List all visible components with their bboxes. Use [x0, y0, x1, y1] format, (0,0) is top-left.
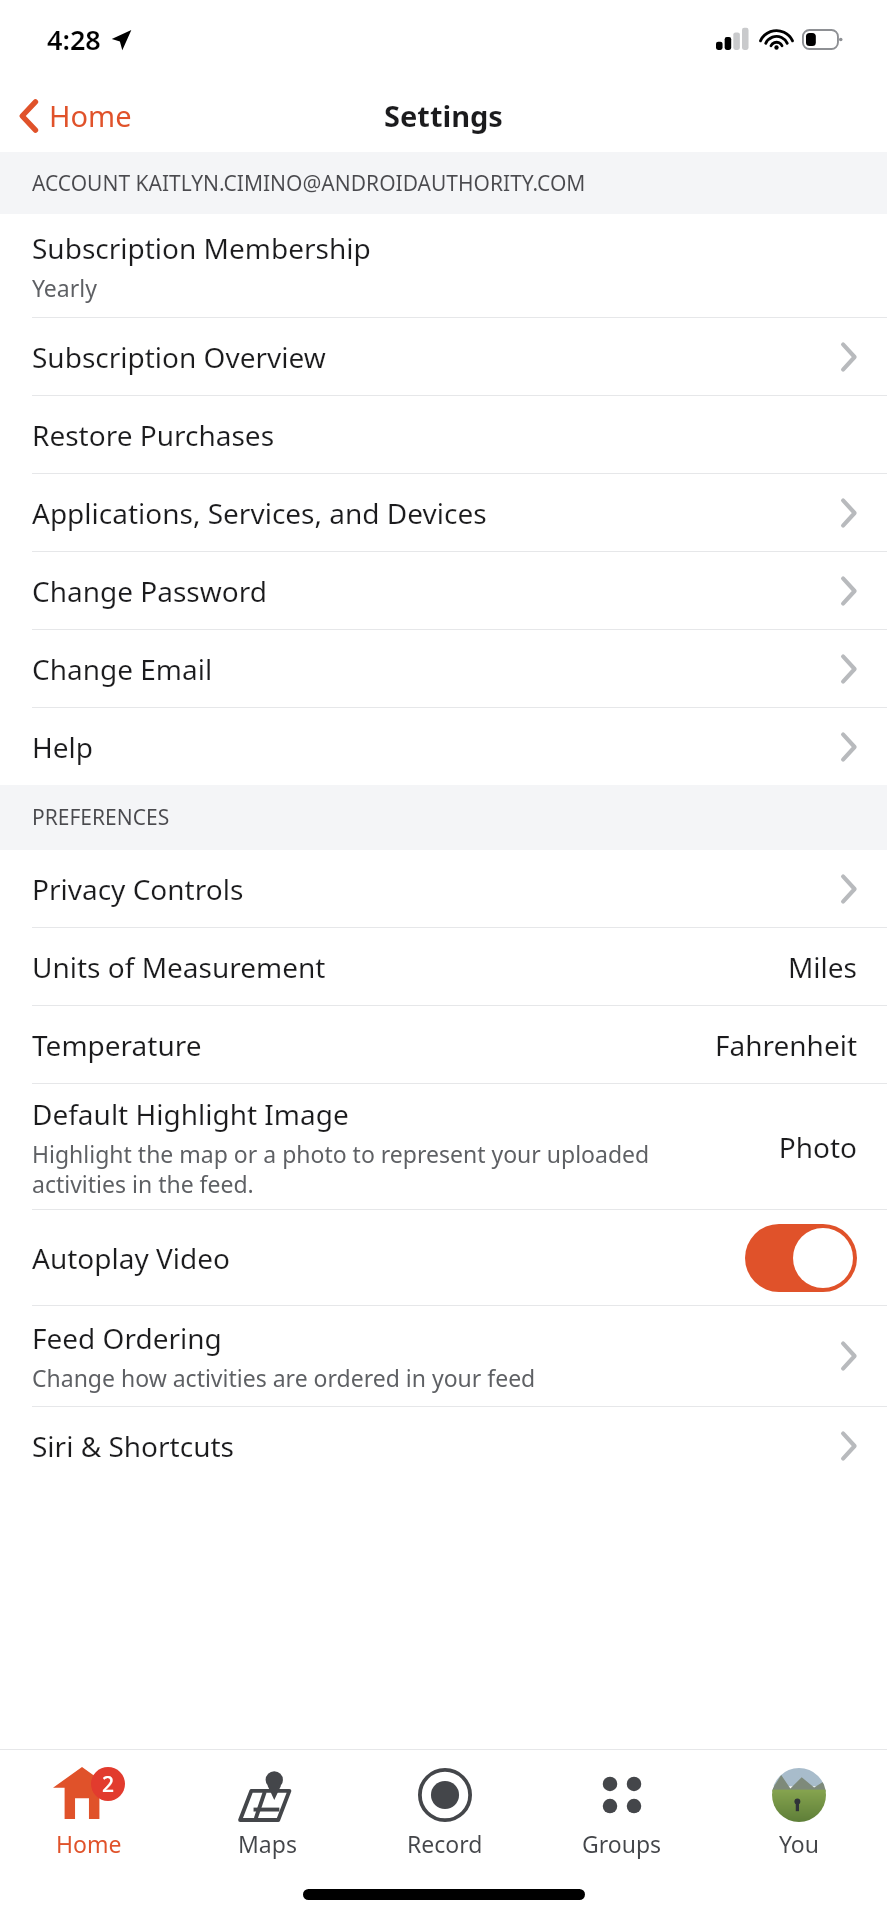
- staticText: Groups: [582, 1828, 662, 1859]
- button[interactable]: Help: [0, 708, 887, 785]
- staticText: Home: [56, 1828, 122, 1859]
- button[interactable]: Change Password: [0, 552, 887, 629]
- staticText: Subscription Overview: [32, 338, 326, 376]
- staticText: Miles: [787, 948, 857, 986]
- staticText: 2: [102, 1770, 115, 1799]
- staticText: Change how activities are ordered in you…: [32, 1362, 536, 1393]
- button[interactable]: Default Highlight Image: [0, 1084, 887, 1209]
- staticText: Siri & Shortcuts: [32, 1427, 234, 1465]
- staticText: Record: [407, 1828, 483, 1859]
- button[interactable]: Subscription Membership: [0, 214, 887, 317]
- staticText: Maps: [238, 1828, 297, 1859]
- staticText: Help: [32, 728, 93, 766]
- staticText: Yearly: [32, 272, 97, 303]
- staticText: Units of Measurement: [32, 948, 326, 986]
- button[interactable]: Privacy Controls: [0, 850, 887, 927]
- button[interactable]: Feed Ordering: [0, 1306, 887, 1406]
- staticText: Privacy Controls: [32, 870, 244, 908]
- staticText: Fahrenheit: [714, 1026, 857, 1064]
- button[interactable]: You: [710, 1750, 887, 1868]
- staticText: 4:28: [47, 21, 101, 58]
- staticText: Home: [49, 96, 132, 135]
- staticText: Photo: [778, 1128, 857, 1166]
- button[interactable]: Maps: [178, 1750, 356, 1868]
- button[interactable]: Temperature: [0, 1006, 887, 1083]
- staticText: Default Highlight Image: [32, 1095, 349, 1133]
- staticText: Change Password: [32, 572, 267, 610]
- staticText: Subscription Membership: [32, 229, 371, 267]
- staticText: Change Email: [32, 650, 213, 688]
- staticText: Autoplay Video: [32, 1239, 230, 1277]
- staticText: ACCOUNT KAITLYN.CIMINO@ANDROIDAUTHORITY.…: [32, 169, 586, 198]
- staticText: Feed Ordering: [32, 1319, 222, 1357]
- button[interactable]: Change Email: [0, 630, 887, 707]
- button[interactable]: Units of Measurement: [0, 928, 887, 1005]
- button[interactable]: Autoplay Video: [0, 1210, 887, 1305]
- staticText: Highlight the map or a photo to represen…: [32, 1138, 650, 1199]
- button[interactable]: Restore Purchases: [0, 396, 887, 473]
- button[interactable]: Record: [356, 1750, 533, 1868]
- button[interactable]: Groups: [533, 1750, 710, 1868]
- button[interactable]: Siri & Shortcuts: [0, 1407, 887, 1484]
- staticText: You: [779, 1828, 819, 1859]
- staticText: Restore Purchases: [32, 416, 275, 454]
- staticText: PREFERENCES: [32, 803, 170, 832]
- button[interactable]: Home: [0, 88, 148, 143]
- button[interactable]: Applications, Services, and Devices: [0, 474, 887, 551]
- staticText: Settings: [384, 96, 503, 135]
- staticText: Temperature: [32, 1026, 202, 1064]
- button[interactable]: Autoplay Video toggle: [745, 1224, 857, 1292]
- staticText: Applications, Services, and Devices: [32, 494, 487, 532]
- button[interactable]: 2: [0, 1750, 178, 1868]
- button[interactable]: Subscription Overview: [0, 318, 887, 395]
